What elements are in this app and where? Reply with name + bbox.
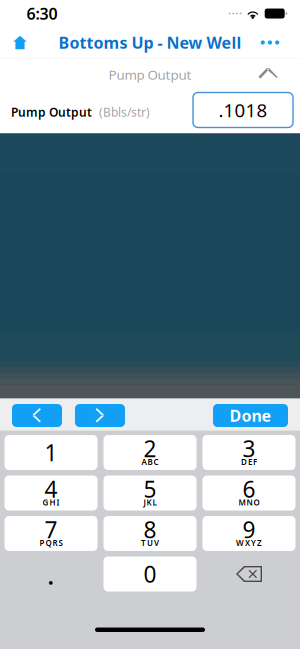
button[interactable]: 4: [4, 475, 97, 510]
staticText: Bottoms Up - New Well: [58, 32, 241, 53]
staticText: 3: [242, 433, 255, 463]
button[interactable]: 5: [103, 475, 196, 510]
button[interactable]: Delete: [202, 556, 295, 591]
button[interactable]: 8: [103, 516, 196, 551]
staticText: M N O: [238, 497, 259, 508]
staticText: .1018: [218, 98, 267, 122]
button[interactable]: Next field: [75, 404, 125, 427]
button[interactable]: 3: [202, 435, 295, 470]
button[interactable]: 2: [103, 435, 196, 470]
button[interactable]: Home: [0, 27, 40, 58]
staticText: .: [47, 555, 55, 593]
staticText: D E F: [241, 457, 257, 467]
staticText: G H I: [42, 497, 59, 508]
button[interactable]: .: [4, 556, 97, 591]
staticText: 6:30: [26, 3, 57, 24]
staticText: T U V: [141, 538, 159, 548]
staticText: Done: [229, 405, 271, 426]
staticText: 5: [143, 474, 156, 504]
staticText: Pump Output: [11, 104, 92, 120]
staticText: W X Y Z: [236, 538, 262, 548]
staticText: 0: [143, 559, 156, 589]
button[interactable]: 6: [202, 475, 295, 510]
staticText: 1: [44, 437, 57, 467]
staticText: Pump Output: [108, 66, 191, 83]
button[interactable]: 1: [4, 435, 97, 470]
button[interactable]: Pump Output: [0, 58, 300, 90]
staticText: 9: [242, 514, 255, 544]
staticText: J K L: [143, 497, 156, 508]
button[interactable]: More options: [251, 27, 289, 58]
button[interactable]: Done: [213, 404, 288, 427]
button[interactable]: 7: [4, 516, 97, 551]
staticText: 4: [44, 474, 57, 504]
staticText: 7: [44, 514, 57, 544]
staticText: P Q R S: [39, 538, 62, 548]
staticText: 8: [143, 514, 156, 544]
button[interactable]: 9: [202, 516, 295, 551]
staticText: 6: [242, 474, 255, 504]
button[interactable]: Previous field: [12, 404, 62, 427]
staticText: 2: [143, 433, 156, 463]
staticText: A B C: [141, 457, 158, 467]
button[interactable]: .1018: [193, 94, 293, 129]
button[interactable]: 0: [103, 556, 196, 591]
staticText: (Bbls/str): [99, 104, 150, 120]
